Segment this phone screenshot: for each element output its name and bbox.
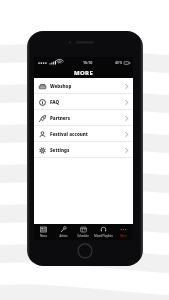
button[interactable]: More <box>113 224 133 240</box>
button[interactable]: Schedule <box>73 224 93 240</box>
staticText: Settings <box>50 147 70 153</box>
staticText: Partners <box>50 115 71 121</box>
staticText: 40 % <box>115 61 123 65</box>
staticText: 16:10 <box>83 60 93 65</box>
staticText: Schedule <box>77 234 89 238</box>
button[interactable]: Partners <box>34 110 133 126</box>
button[interactable]: Artists <box>53 224 73 240</box>
staticText: News <box>40 234 47 238</box>
button[interactable]: News <box>34 224 53 240</box>
staticText: More <box>120 234 127 238</box>
staticText: Festival account <box>50 131 88 137</box>
button[interactable]: Settings <box>34 142 133 158</box>
staticText: Mixed Playlists <box>94 234 113 238</box>
button[interactable]: FAQ <box>34 94 133 110</box>
button[interactable]: Festival account <box>34 126 133 142</box>
staticText: Webshop <box>50 83 72 89</box>
staticText: Artists <box>59 234 68 238</box>
button[interactable]: Mixed Playlists <box>93 224 113 240</box>
button[interactable]: Webshop <box>34 78 133 94</box>
staticText: FAQ <box>50 99 60 105</box>
staticText: MORE <box>74 69 94 77</box>
